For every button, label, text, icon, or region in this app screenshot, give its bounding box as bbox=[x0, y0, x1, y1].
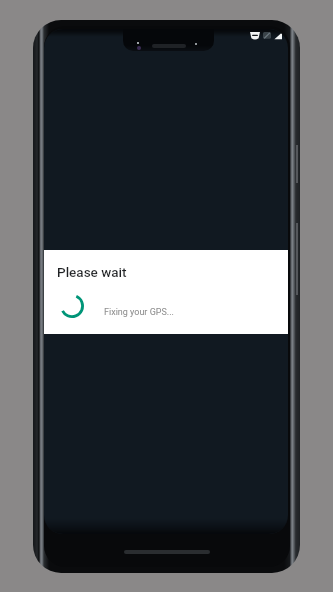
staticText: Fixing your GPS... bbox=[104, 307, 174, 318]
staticText: Please wait bbox=[57, 264, 127, 280]
button[interactable]: Please wait bbox=[44, 250, 288, 334]
